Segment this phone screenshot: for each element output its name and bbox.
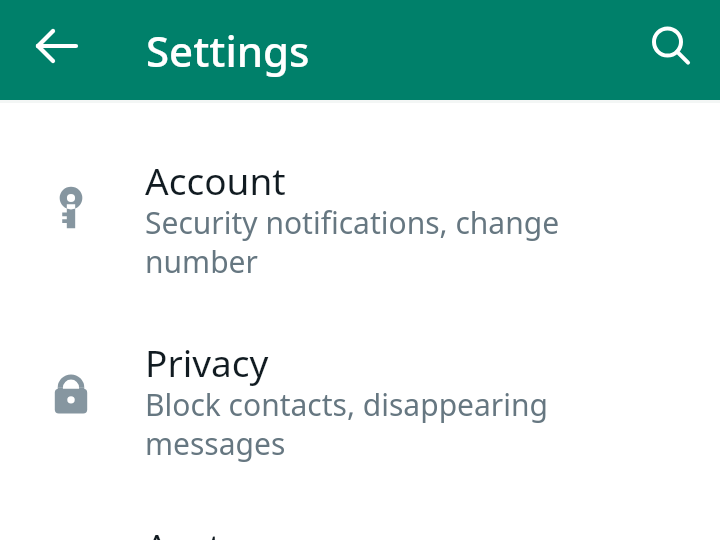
staticText: number [145, 241, 258, 282]
button[interactable]: Avatar [0, 521, 720, 540]
staticText: Account [145, 155, 286, 205]
staticText: Avatar [145, 521, 258, 540]
staticText: messages [145, 423, 286, 464]
button[interactable]: Account [0, 151, 720, 291]
staticText: Privacy [145, 337, 269, 387]
button[interactable]: Search [637, 13, 703, 79]
staticText: Settings [146, 22, 310, 79]
button[interactable]: Privacy [0, 333, 720, 473]
button[interactable]: Back [24, 13, 90, 79]
staticText: Security notifications, change [145, 202, 560, 243]
staticText: Block contacts, disappearing [145, 384, 548, 425]
